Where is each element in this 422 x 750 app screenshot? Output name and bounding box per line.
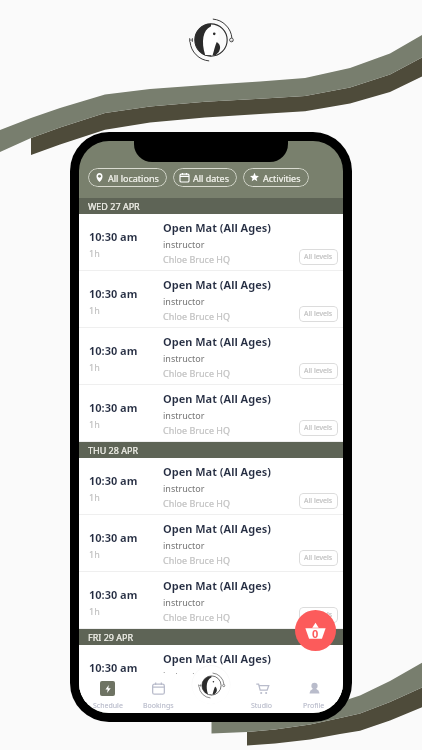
staticText: Open Mat (All Ages) [163,220,271,235]
staticText: 1h [89,491,100,503]
button[interactable]: 10:30 am [79,645,343,702]
staticText: 1h [89,247,100,259]
staticText: All levels [304,496,333,506]
staticText: Profile [303,701,325,711]
staticText: All locations [108,172,159,184]
staticText: 10:30 am [89,286,138,301]
staticText: instructor [163,352,205,364]
staticText: 10:30 am [89,660,138,675]
button[interactable]: 10:30 am [79,271,343,328]
staticText: Studio [251,701,273,711]
staticText: All levels [304,610,333,620]
staticText: Open Mat (All Ages) [163,464,271,479]
staticText: THU 28 APR [88,444,139,456]
staticText: WED 27 APR [88,200,140,212]
staticText: Open Mat (All Ages) [163,578,271,593]
staticText: Chloe Bruce HQ [163,310,230,322]
staticText: Activities [263,172,301,184]
staticText: instructor [163,539,205,551]
staticText: 10:30 am [89,229,138,244]
staticText: Schedule [93,701,123,711]
staticText: instructor [163,482,205,494]
staticText: 1h [89,304,100,316]
staticText: All levels [304,366,333,376]
staticText: Chloe Bruce HQ [163,253,230,265]
button[interactable]: 10:30 am [79,458,343,515]
button[interactable]: Shopping basket [295,610,336,651]
staticText: 1h [89,605,100,617]
staticText: FRI 29 APR [88,631,134,643]
staticText: instructor [163,238,205,250]
staticText: 10:30 am [89,530,138,545]
staticText: 1h [89,361,100,373]
staticText: Chloe Bruce HQ [163,424,230,436]
button[interactable]: Home [192,666,230,704]
button[interactable]: 10:30 am [79,385,343,442]
staticText: All levels [304,423,333,433]
staticText: All levels [304,309,333,319]
staticText: Chloe Bruce HQ [163,684,230,696]
staticText: instructor [163,295,205,307]
staticText: Open Mat (All Ages) [163,277,271,292]
button[interactable]: Schedule [82,674,133,711]
staticText: Chloe Bruce HQ [163,554,230,566]
button[interactable]: Bookings [133,674,184,711]
button[interactable]: Activities [243,168,309,187]
button[interactable]: 10:30 am [79,515,343,572]
staticText: 10:30 am [89,400,138,415]
button[interactable]: 10:30 am [79,572,343,629]
staticText: 10:30 am [89,587,138,602]
staticText: Open Mat (All Ages) [163,391,271,406]
staticText: All levels [304,683,333,693]
staticText: Open Mat (All Ages) [163,334,271,349]
staticText: 1h [89,418,100,430]
button[interactable]: 10:30 am [79,328,343,385]
staticText: Bookings [143,701,174,711]
staticText: Open Mat (All Ages) [163,521,271,536]
button[interactable]: 10:30 am [79,214,343,271]
staticText: 10:30 am [89,473,138,488]
staticText: instructor [163,669,205,681]
staticText: instructor [163,409,205,421]
staticText: All dates [193,172,229,184]
staticText: 1h [89,548,100,560]
button[interactable]: Profile [288,674,340,711]
button[interactable]: All dates [173,168,237,187]
staticText: Open Mat (All Ages) [163,651,271,666]
staticText: All levels [304,553,333,563]
staticText: Chloe Bruce HQ [163,497,230,509]
staticText: All levels [304,252,333,262]
staticText: 10:30 am [89,343,138,358]
staticText: instructor [163,596,205,608]
button[interactable]: Studio [236,674,288,711]
staticText: Chloe Bruce HQ [163,611,230,623]
button[interactable]: All locations [88,168,167,187]
staticText: 0 [312,626,319,641]
staticText: Chloe Bruce HQ [163,367,230,379]
